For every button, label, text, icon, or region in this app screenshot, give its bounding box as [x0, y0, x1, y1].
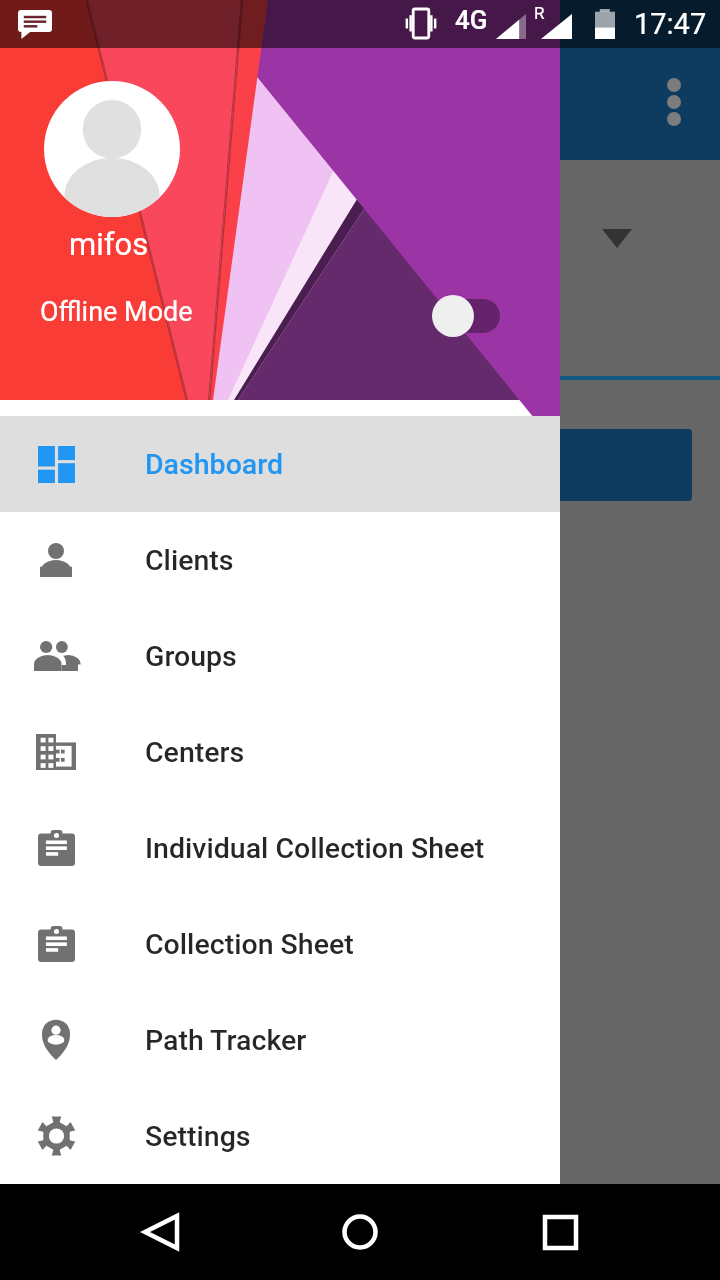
button[interactable]: Individual Collection Sheet [0, 800, 560, 896]
staticText: Settings [145, 1120, 251, 1153]
staticText: Centers [145, 736, 245, 769]
staticText: Individual Collection Sheet [145, 832, 485, 865]
button[interactable]: Centers [0, 704, 560, 800]
staticText: Offline Mode [40, 296, 193, 328]
button[interactable]: Profile picture [44, 81, 180, 217]
button[interactable] [360, 429, 692, 501]
button[interactable]: Collection Sheet [0, 896, 560, 992]
button[interactable]: Home [320, 1184, 400, 1280]
button[interactable]: Recent apps [520, 1184, 600, 1280]
button[interactable]: More options [648, 76, 700, 128]
button[interactable]: Groups [0, 608, 560, 704]
staticText: 17:47 [634, 7, 707, 41]
staticText: R [534, 3, 545, 23]
staticText: 4G [455, 5, 488, 35]
staticText: Path Tracker [145, 1024, 307, 1057]
staticText: Groups [145, 640, 237, 673]
button[interactable]: Dashboard [0, 416, 560, 512]
button[interactable]: Offline mode switch [424, 286, 514, 346]
staticText: Collection Sheet [145, 928, 354, 961]
button[interactable]: Settings [0, 1088, 560, 1184]
staticText: mifos [69, 226, 149, 262]
staticText: Dashboard [145, 448, 284, 481]
button[interactable]: Clients [0, 512, 560, 608]
button[interactable]: Path Tracker [0, 992, 560, 1088]
button[interactable]: Back [120, 1184, 200, 1280]
staticText: Clients [145, 544, 234, 577]
